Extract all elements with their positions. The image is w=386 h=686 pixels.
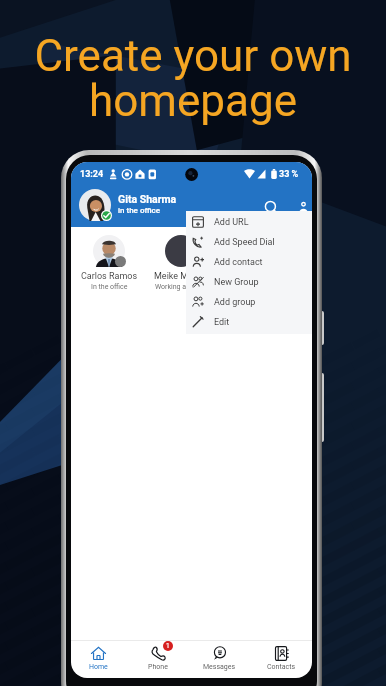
staticText: New Group — [214, 277, 259, 288]
staticText: Messages — [203, 663, 236, 671]
button[interactable]: Meike Mahler — [145, 230, 217, 291]
staticText: Away — [245, 283, 262, 291]
button[interactable]: Add Speed Dial — [186, 232, 312, 252]
button[interactable]: Anna Lang — [217, 230, 289, 291]
staticText: Phone — [148, 663, 168, 671]
staticText: Create your own homepage — [34, 30, 352, 126]
staticText: 1 — [166, 642, 170, 650]
staticText: Meike Mahler — [154, 271, 209, 282]
button[interactable]: Search — [260, 196, 283, 219]
button[interactable]: Add contact — [186, 252, 312, 272]
button[interactable]: Carlos Ramos — [73, 230, 145, 291]
button[interactable]: Edit — [186, 312, 312, 332]
button[interactable]: New Group — [186, 272, 312, 292]
staticText: Add URL — [214, 217, 249, 228]
button[interactable]: Messages — [191, 641, 247, 671]
staticText: Gita Sharma — [118, 193, 177, 205]
staticText: 33 % — [279, 169, 299, 180]
staticText: Home — [89, 663, 108, 671]
staticText: Anna Lang — [232, 271, 275, 282]
staticText: Add Speed Dial — [214, 237, 275, 248]
button[interactable]: Contacts — [253, 641, 309, 671]
button[interactable]: Add URL — [186, 212, 312, 232]
staticText: in the office — [118, 206, 161, 215]
button[interactable]: 1 — [130, 641, 186, 671]
staticText: Working at home — [155, 283, 208, 291]
button[interactable]: Home — [71, 641, 126, 671]
staticText: Carlos Ramos — [81, 271, 138, 282]
staticText: In the office — [91, 283, 128, 291]
button[interactable]: Add group — [186, 292, 312, 312]
staticText: Add contact — [214, 257, 263, 268]
staticText: Edit — [214, 317, 230, 328]
staticText: 13:24 — [80, 169, 104, 180]
staticText: Add group — [214, 297, 256, 308]
button[interactable]: Profile — [292, 196, 312, 219]
staticText: Contacts — [267, 663, 296, 671]
